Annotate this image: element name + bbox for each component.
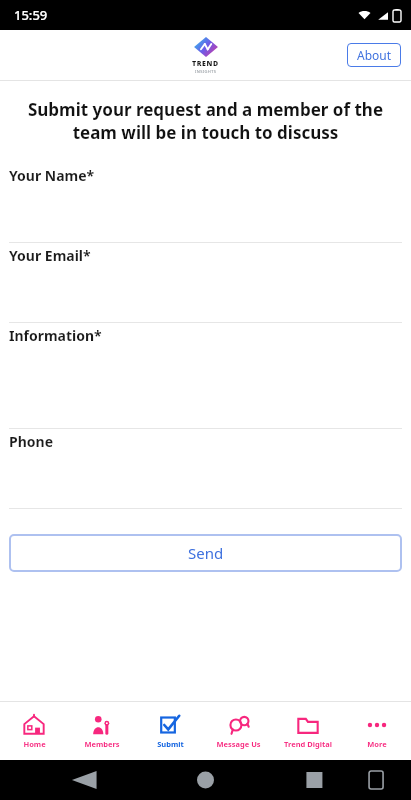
button[interactable]: Send [9,534,402,572]
staticText: Trend Digital [284,739,332,749]
button[interactable]: Phone [0,429,411,509]
button[interactable]: About [347,43,401,67]
staticText: About [357,47,392,63]
staticText: 15:59 [14,6,48,24]
button[interactable]: Information* [0,323,411,429]
staticText: Your Name* [9,166,95,185]
button[interactable]: Your Name* [0,163,411,243]
staticText: Send [188,543,224,563]
staticText: Submit [157,739,184,749]
staticText: Members [84,739,120,749]
staticText: Home [23,739,46,749]
button[interactable]: Submit [136,702,204,760]
staticText: Phone [9,432,54,451]
button[interactable]: Message Us [204,702,273,760]
staticText: More [367,739,387,749]
staticText: Your Email* [9,246,91,265]
staticText: Message Us [216,739,261,749]
staticText: TREND [192,59,219,69]
button[interactable]: Home [0,702,68,760]
staticText: INSIGHTS [195,69,217,74]
button[interactable]: Your Email* [0,243,411,323]
button[interactable]: Members [68,702,136,760]
button[interactable]: More [342,702,411,760]
staticText: Information* [9,326,102,345]
staticText: Submit your request and a member of the … [16,98,395,144]
button[interactable]: Trend Digital [273,702,342,760]
